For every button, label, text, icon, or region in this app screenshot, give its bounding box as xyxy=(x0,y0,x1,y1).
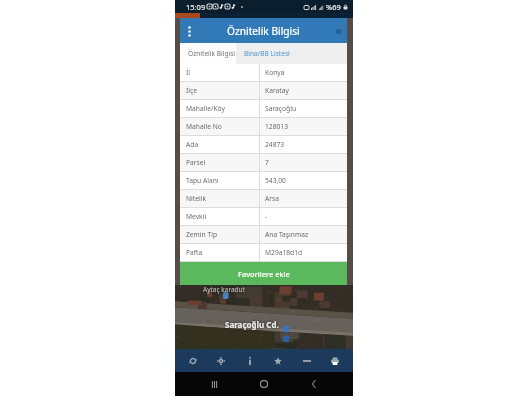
staticText: Karatay xyxy=(265,86,289,95)
button[interactable]: Info xyxy=(239,350,261,372)
staticText: Öznitelik Bilgisi xyxy=(227,24,300,38)
staticText: Tapu Alanı xyxy=(186,176,219,185)
staticText: Saraçoğlu Cd. xyxy=(225,319,279,330)
button[interactable]: Favorilere ekle xyxy=(180,262,347,285)
button[interactable]: Favorite xyxy=(267,350,289,372)
button[interactable]: Locate xyxy=(210,350,232,372)
staticText: Mahalle/Köy xyxy=(186,104,225,113)
button[interactable]: Home xyxy=(239,372,289,396)
staticText: Favorilere ekle xyxy=(238,269,290,279)
staticText: Ana Taşınmaz xyxy=(265,230,309,239)
staticText: Mevkii xyxy=(186,212,207,221)
staticText: Nitelik xyxy=(186,194,207,203)
staticText: 7 xyxy=(265,158,269,167)
button[interactable]: Measure xyxy=(296,350,318,372)
staticText: Zemin Tip xyxy=(186,230,218,239)
button[interactable]: Bina/BB Listesi xyxy=(236,43,347,64)
staticText: Saraçoğlu xyxy=(265,104,297,113)
staticText: 15:09 xyxy=(186,2,206,12)
staticText: Öznitelik Bilgisi xyxy=(188,49,236,58)
staticText: Ada xyxy=(186,140,199,149)
staticText: - xyxy=(265,212,268,221)
button[interactable]: Refresh xyxy=(182,350,204,372)
staticText: M29a18d1d xyxy=(265,248,303,257)
staticText: Bina/BB Listesi xyxy=(244,49,290,58)
button[interactable]: Back xyxy=(289,372,339,396)
staticText: Arsa xyxy=(265,194,279,203)
staticText: İlçe xyxy=(186,86,197,95)
staticText: Konya xyxy=(265,68,285,77)
staticText: İl xyxy=(186,68,190,77)
staticText: Parsel xyxy=(186,158,206,167)
button[interactable]: Close xyxy=(330,22,347,39)
button[interactable]: More options xyxy=(180,22,197,39)
staticText: Aytaç karadut xyxy=(203,285,245,294)
staticText: %69 xyxy=(326,2,341,12)
staticText: Mahalle No xyxy=(186,122,222,131)
button[interactable]: Print xyxy=(324,350,346,372)
staticText: 128013 xyxy=(265,122,288,131)
staticText: Pafta xyxy=(186,248,203,257)
button[interactable]: Öznitelik Bilgisi xyxy=(180,43,236,64)
button[interactable]: Recents xyxy=(189,372,239,396)
staticText: 543,00 xyxy=(265,176,286,185)
staticText: 24873 xyxy=(265,140,285,149)
